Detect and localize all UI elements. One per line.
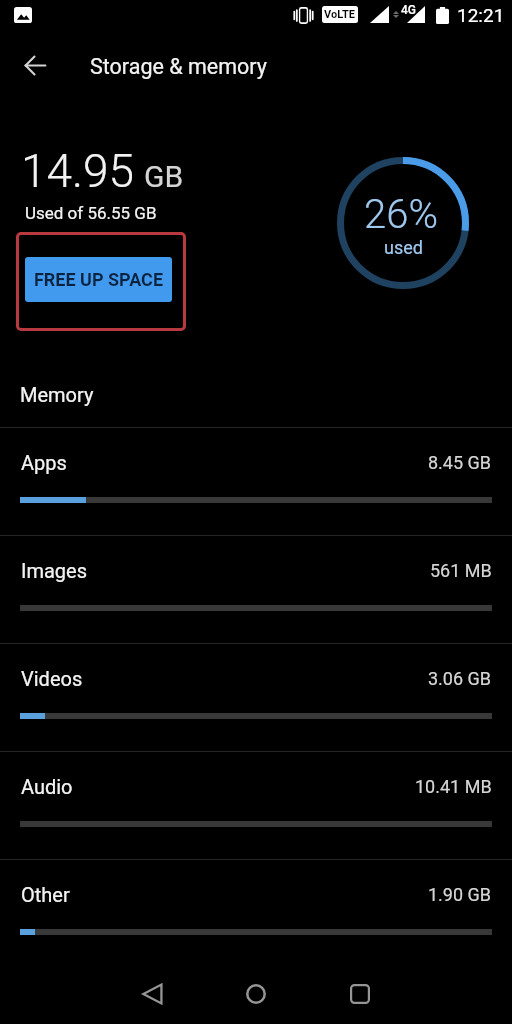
staticText: 14.95: [21, 144, 135, 198]
staticText: 26%: [364, 191, 438, 238]
staticText: Storage & memory: [90, 54, 267, 79]
button[interactable]: Back: [100, 964, 204, 1024]
staticText: 8.45 GB: [428, 452, 492, 473]
button[interactable]: Home: [204, 964, 308, 1024]
staticText: 4G: [401, 3, 416, 17]
button[interactable]: Recent apps: [308, 964, 412, 1024]
staticText: Used of 56.55 GB: [25, 203, 157, 223]
staticText: Audio: [21, 775, 73, 798]
staticText: 12:21: [457, 4, 505, 26]
staticText: 3.06 GB: [428, 668, 492, 689]
staticText: VoLTE: [324, 8, 356, 21]
staticText: 1.90 GB: [428, 884, 492, 905]
button[interactable]: Images: [0, 535, 512, 643]
staticText: Other: [21, 883, 70, 906]
staticText: 10.41 MB: [415, 776, 492, 797]
staticText: FREE UP SPACE: [34, 269, 164, 290]
staticText: GB: [144, 159, 184, 194]
button[interactable]: Apps: [0, 427, 512, 535]
button[interactable]: Videos: [0, 643, 512, 751]
staticText: used: [384, 237, 423, 258]
staticText: Images: [21, 559, 88, 582]
staticText: 561 MB: [430, 560, 492, 581]
button[interactable]: FREE UP SPACE: [25, 257, 172, 302]
staticText: Memory: [20, 383, 94, 406]
staticText: Apps: [21, 451, 67, 474]
button[interactable]: Other: [0, 859, 512, 967]
staticText: Videos: [21, 667, 83, 690]
button[interactable]: Audio: [0, 751, 512, 859]
button[interactable]: Navigate up: [14, 44, 56, 86]
